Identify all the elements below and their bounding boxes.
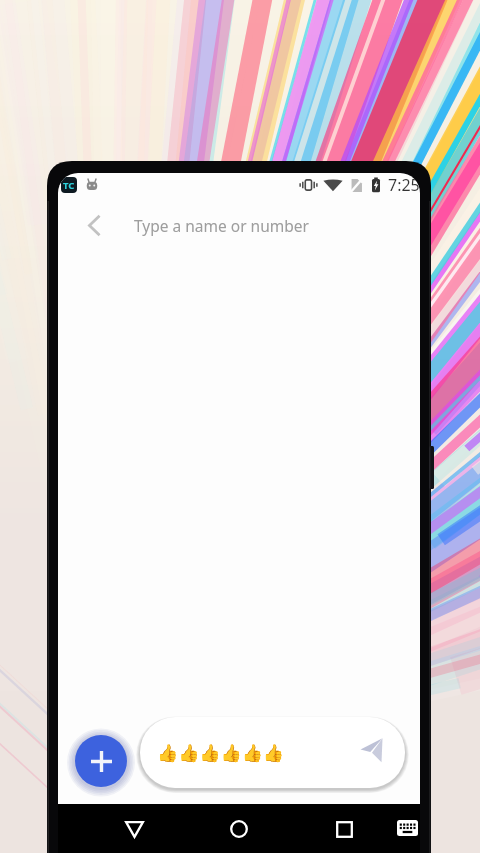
- button[interactable]: 👍👍👍👍👍👍: [140, 717, 405, 788]
- staticText: 👍👍👍👍👍👍: [157, 743, 285, 763]
- button[interactable]: Home: [216, 806, 262, 852]
- staticText: TC: [63, 179, 75, 192]
- button[interactable]: New conversation: [75, 735, 127, 787]
- staticText: Type a name or number: [134, 215, 309, 236]
- button[interactable]: Back: [70, 201, 118, 249]
- button[interactable]: Back: [111, 806, 157, 852]
- button[interactable]: Switch keyboard: [391, 812, 420, 844]
- button[interactable]: Recent apps: [321, 806, 367, 852]
- staticText: 7:25: [388, 174, 420, 196]
- button[interactable]: Send: [356, 735, 386, 765]
